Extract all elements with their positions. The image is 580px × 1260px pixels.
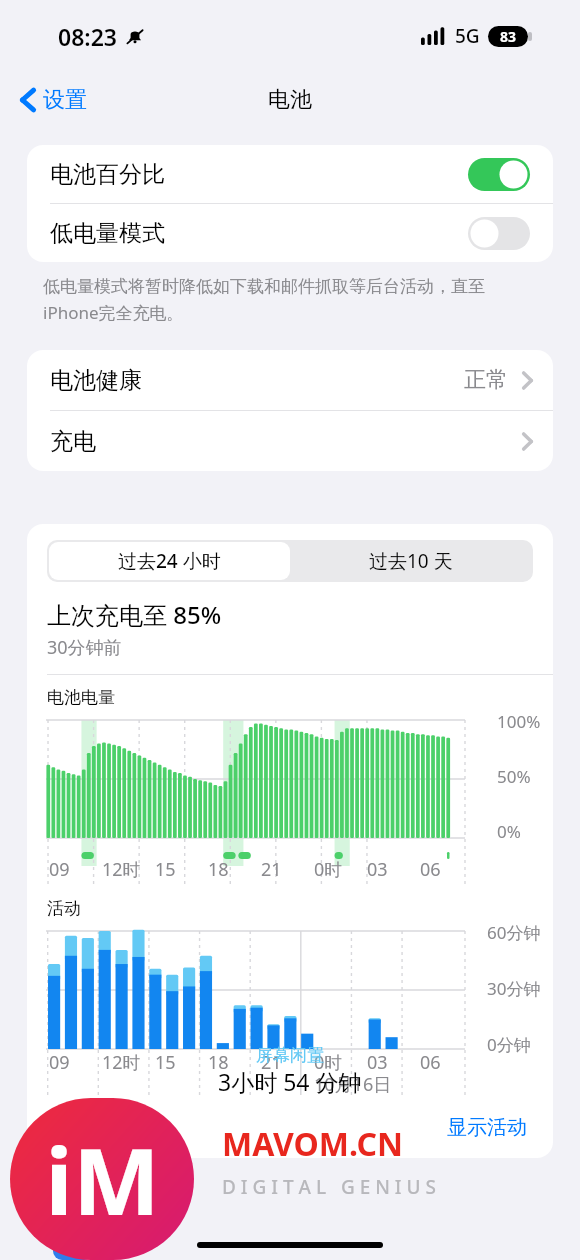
- staticText: 50%: [497, 765, 531, 788]
- button[interactable]: 过去10 天: [290, 542, 531, 580]
- staticText: 电池: [268, 86, 312, 114]
- button[interactable]: 电池百分比: [27, 145, 553, 203]
- staticText: 06: [420, 857, 441, 882]
- staticText: D I G I T A L G E N I U S: [222, 1174, 436, 1200]
- staticText: 设置: [43, 86, 87, 114]
- button[interactable]: 设置: [12, 82, 95, 118]
- button[interactable]: 过去24 小时: [49, 542, 290, 580]
- staticText: 100%: [497, 710, 541, 733]
- staticText: 09: [49, 857, 70, 882]
- staticText: 21: [261, 1050, 282, 1075]
- staticText: 电池健康: [50, 366, 142, 395]
- staticText: 低电量模式: [50, 219, 165, 248]
- staticText: 06: [420, 1050, 441, 1075]
- staticText: 10月16日: [314, 1072, 392, 1097]
- staticText: 正常: [464, 366, 508, 394]
- staticText: 电池百分比: [50, 160, 165, 189]
- staticText: 屏幕闲置: [256, 1045, 324, 1066]
- staticText: 0%: [497, 820, 521, 843]
- staticText: iM: [45, 1117, 160, 1242]
- staticText: 显示活动: [447, 1115, 527, 1140]
- staticText: 60分钟: [487, 921, 541, 944]
- staticText: 21: [261, 857, 282, 882]
- staticText: 0时: [314, 857, 343, 882]
- staticText: 83: [500, 27, 517, 46]
- staticText: MAVOM.CN: [222, 1122, 403, 1166]
- button[interactable]: 电池健康: [27, 350, 553, 410]
- staticText: 30分钟: [487, 977, 541, 1000]
- staticText: 12时: [102, 857, 141, 882]
- staticText: 活动: [47, 898, 81, 919]
- button[interactable]: 低电量模式: [27, 204, 553, 262]
- staticText: 09: [49, 1050, 70, 1075]
- staticText: 0分钟: [487, 1033, 531, 1056]
- staticText: 上次充电至 85%: [47, 598, 222, 631]
- staticText: 08:23: [58, 21, 117, 52]
- staticText: 18: [208, 1050, 229, 1075]
- staticText: 过去10 天: [369, 548, 453, 574]
- staticText: 过去24 小时: [118, 548, 221, 574]
- staticText: 15: [155, 1050, 176, 1075]
- staticText: 0时: [314, 1050, 343, 1075]
- staticText: 12时: [102, 1050, 141, 1075]
- staticText: 30分钟前: [47, 635, 122, 660]
- staticText: 18: [208, 857, 229, 882]
- staticText: 5G: [455, 23, 480, 49]
- staticText: 03: [367, 857, 388, 882]
- staticText: 电池电量: [47, 687, 115, 708]
- staticText: 充电: [50, 427, 96, 456]
- button[interactable]: 充电: [27, 411, 553, 471]
- staticText: 低电量模式将暂时降低如下载和邮件抓取等后台活动，直至 iPhone完全充电。: [43, 276, 485, 324]
- button[interactable]: 显示活动: [443, 1111, 531, 1144]
- staticText: 3小时 54 分钟: [218, 1066, 362, 1097]
- staticText: 03: [367, 1050, 388, 1075]
- staticText: 15: [155, 857, 176, 882]
